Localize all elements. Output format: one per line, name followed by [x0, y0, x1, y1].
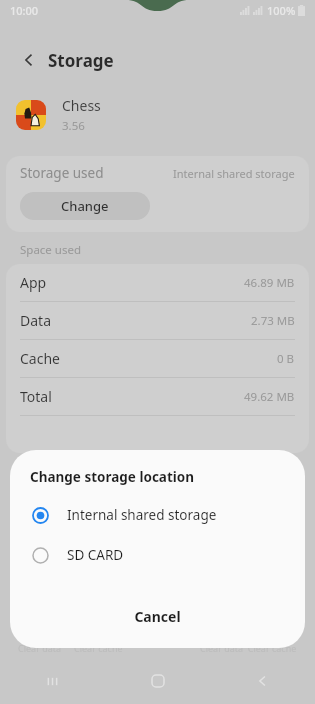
button[interactable]: Data [6, 302, 309, 339]
button[interactable]: Back [16, 47, 42, 73]
button[interactable]: App [6, 264, 309, 301]
staticText: Cache [20, 349, 60, 368]
staticText: Internal shared storage [173, 166, 295, 181]
staticText: 46.89 MB [244, 275, 295, 291]
staticText: Space used [20, 242, 82, 258]
staticText: Change [61, 197, 109, 215]
button[interactable]: SD CARD [10, 540, 305, 570]
button[interactable]: Storage used [6, 156, 309, 190]
staticText: 100% [267, 3, 296, 18]
staticText: 0 B [277, 351, 295, 367]
staticText: 10:00 [10, 3, 39, 18]
staticText: Change storage location [30, 468, 195, 486]
button[interactable]: Total [6, 378, 309, 415]
staticText: App [20, 273, 47, 292]
button[interactable]: Internal shared storage [10, 500, 305, 530]
button[interactable]: Change [20, 192, 150, 220]
staticText: Clear data Clear cache [200, 642, 297, 654]
staticText: SD CARD [67, 546, 124, 564]
button[interactable]: Cache [6, 340, 309, 377]
staticText: 49.62 MB [244, 389, 295, 405]
staticText: Chess [62, 96, 101, 115]
button[interactable]: Cancel [10, 596, 305, 636]
button[interactable] [6, 416, 309, 453]
staticText: Clear data [18, 642, 62, 654]
staticText: Storage [48, 49, 114, 72]
staticText: Clear cache [74, 642, 123, 654]
staticText: Data [20, 311, 51, 330]
staticText: Cancel [134, 607, 181, 626]
staticText: 2.73 MB [251, 313, 295, 329]
staticText: Storage used [20, 164, 104, 182]
staticText: Internal shared storage [67, 506, 217, 524]
staticText: 3.56 [62, 118, 85, 134]
staticText: Total [20, 387, 52, 406]
